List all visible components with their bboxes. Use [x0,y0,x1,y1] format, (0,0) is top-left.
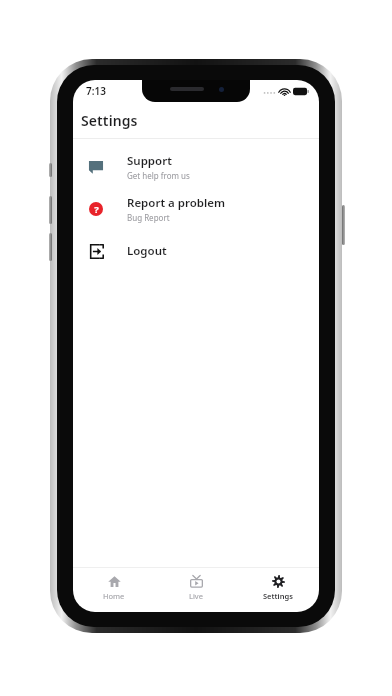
staticText: Logout [127,243,167,259]
staticText: Bug Report [127,212,170,223]
staticText: Settings [81,111,138,130]
button[interactable]: Logout [73,230,319,272]
staticText: Report a problem [127,195,226,211]
staticText: Support [127,153,172,169]
button[interactable]: Report a problem [73,188,319,230]
staticText: 7:13 [86,84,106,98]
other: Report a problem [87,200,105,218]
staticText: Get help from us [127,170,190,181]
staticText: Live [189,591,203,601]
staticText: Settings [263,591,293,601]
other: Logout [87,242,105,260]
other: Support [87,158,105,176]
button[interactable]: Settings [237,568,319,608]
button[interactable]: Home [73,568,155,608]
staticText: ? [94,203,99,216]
button[interactable]: Live [155,568,237,608]
staticText: Home [103,591,125,601]
button[interactable]: Support [73,146,319,188]
